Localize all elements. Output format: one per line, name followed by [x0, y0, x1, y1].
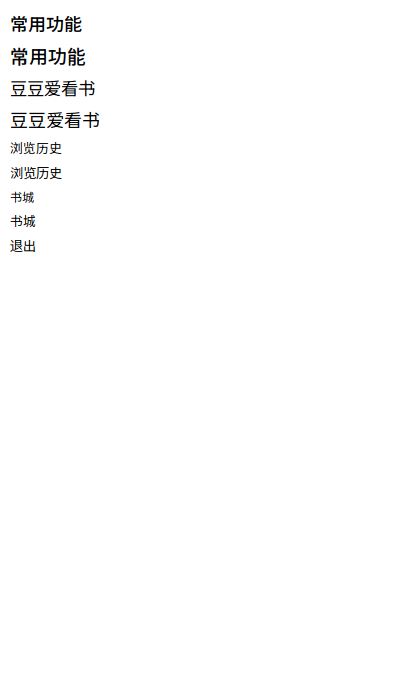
- staticText: 常用功能: [10, 42, 86, 69]
- staticText: 浏览历史: [10, 138, 62, 157]
- staticText: 退出: [10, 236, 36, 255]
- staticText: 浏览历史: [10, 163, 62, 182]
- staticText: 书城: [10, 188, 34, 205]
- staticText: 书城: [10, 211, 36, 230]
- staticText: 豆豆爱看书: [10, 106, 100, 132]
- staticText: 豆豆爱看书: [10, 75, 95, 100]
- staticText: 常用功能: [10, 10, 82, 36]
